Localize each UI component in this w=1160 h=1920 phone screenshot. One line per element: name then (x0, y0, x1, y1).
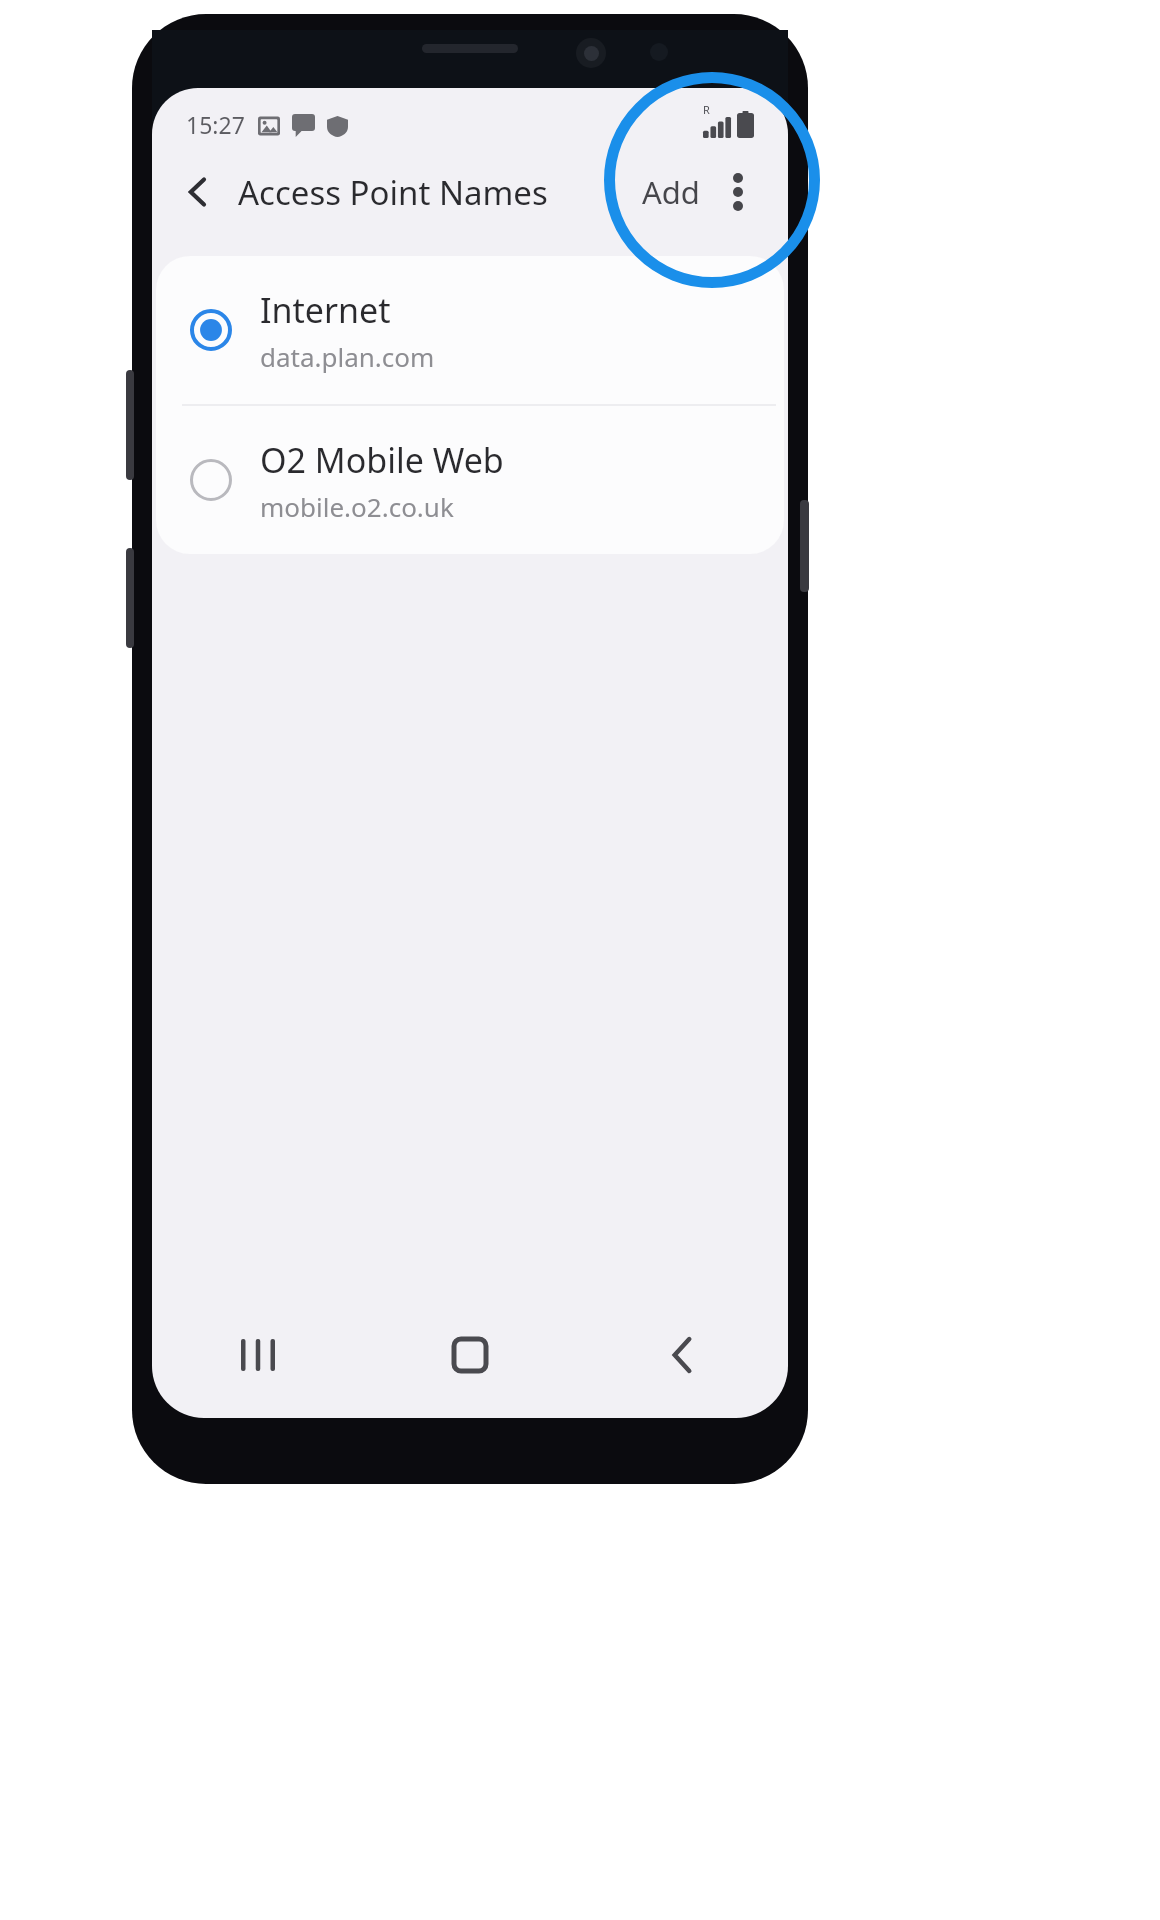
button[interactable]: Back (166, 160, 230, 224)
staticText: Internet (260, 287, 391, 333)
staticText: R (703, 102, 710, 117)
staticText: Add (642, 171, 700, 213)
button[interactable]: More options (708, 162, 768, 222)
button[interactable]: Recent apps (152, 1310, 364, 1400)
button[interactable]: Add (634, 161, 708, 223)
staticText: 15:27 (186, 109, 245, 140)
staticText: mobile.o2.co.uk (260, 489, 454, 524)
staticText: Access Point Names (238, 170, 548, 215)
staticText: data.plan.com (260, 339, 435, 374)
button[interactable]: O2 Mobile Web (156, 406, 784, 554)
staticText: O2 Mobile Web (260, 437, 504, 483)
button[interactable]: Home (364, 1310, 576, 1400)
button[interactable]: Back (576, 1310, 788, 1400)
button[interactable]: Internet (156, 256, 784, 404)
